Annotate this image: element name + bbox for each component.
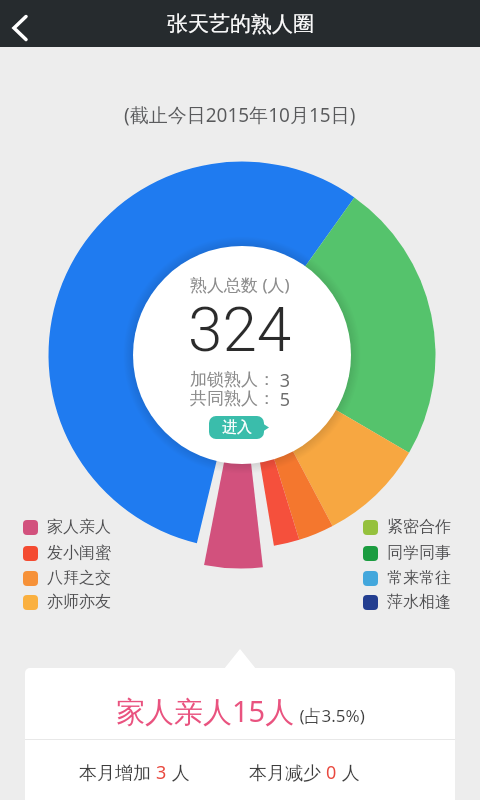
staticText: 人 bbox=[337, 760, 360, 785]
staticText: 萍水相逢 bbox=[387, 592, 451, 612]
button[interactable] bbox=[0, 0, 48, 47]
staticText: 张天艺的熟人圈 bbox=[167, 11, 314, 37]
staticText: 家人亲人 bbox=[47, 517, 111, 537]
staticText: 亦师亦友 bbox=[47, 592, 111, 612]
staticText: 紧密合作 bbox=[387, 517, 451, 537]
staticText: 本月增加 bbox=[79, 760, 156, 785]
staticText: 3 bbox=[156, 760, 167, 785]
staticText: (占3.5%) bbox=[295, 704, 365, 727]
staticText: 常来常往 bbox=[387, 568, 451, 588]
staticText: 八拜之交 bbox=[47, 568, 111, 588]
staticText: 家人亲人15人 bbox=[116, 691, 295, 731]
staticText: 共同熟人： bbox=[190, 388, 275, 409]
staticText: (截止今日2015年10月15日) bbox=[124, 102, 356, 126]
staticText: 人 bbox=[167, 760, 190, 785]
staticText: 3 bbox=[275, 368, 290, 390]
staticText: 进入 bbox=[222, 418, 252, 437]
staticText: 本月减少 bbox=[249, 760, 326, 785]
staticText: 发小闺蜜 bbox=[47, 543, 111, 563]
staticText: 0 bbox=[326, 760, 337, 785]
staticText: 324 bbox=[188, 293, 292, 366]
button[interactable]: 进入 bbox=[209, 416, 270, 439]
staticText: 5 bbox=[275, 387, 290, 409]
staticText: 加锁熟人： bbox=[190, 369, 275, 390]
staticText: 熟人总数 (人) bbox=[190, 273, 290, 296]
staticText: 同学同事 bbox=[387, 543, 451, 563]
